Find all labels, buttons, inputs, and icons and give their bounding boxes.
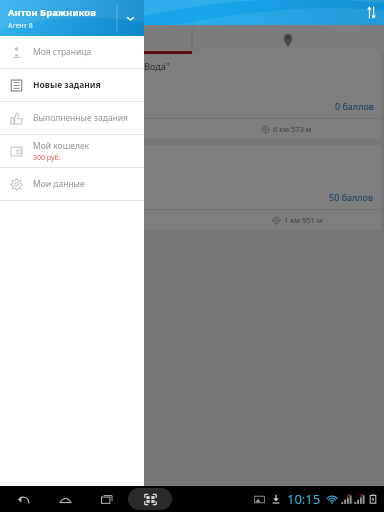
button[interactable]: Карта bbox=[192, 25, 384, 54]
staticText: 50 баллов bbox=[329, 191, 374, 203]
button[interactable]: Мои данные bbox=[0, 168, 144, 200]
button[interactable]: СПИСОК bbox=[0, 25, 192, 54]
button[interactable]: Назад bbox=[10, 486, 36, 512]
button[interactable]: Выполненные задания bbox=[0, 102, 144, 134]
button[interactable]: Моя страница bbox=[0, 36, 144, 68]
staticText: Москва, ул. Костянова, 10 bbox=[10, 124, 104, 134]
staticText: Проверка "Самолеты: Огонь и Вода" bbox=[10, 60, 170, 72]
staticText: Моя страница bbox=[33, 46, 92, 58]
button[interactable]: Фотоотчет с мероприятиями bbox=[3, 145, 381, 230]
button[interactable]: Мой кошелек bbox=[0, 135, 144, 167]
button[interactable]: Синхронизация bbox=[359, 0, 384, 25]
staticText: Мой кошелек bbox=[33, 140, 90, 152]
staticText: Антон Бражников bbox=[8, 6, 96, 19]
staticText: Задания bbox=[34, 6, 76, 20]
button[interactable]: Антон Бражников bbox=[0, 0, 144, 36]
staticText: Мои данные bbox=[33, 178, 85, 190]
button[interactable]: Во весь экран bbox=[128, 488, 172, 510]
staticText: Выполненные задания bbox=[33, 112, 129, 124]
button[interactable]: Проверка "Самолеты: Огонь и Вода" bbox=[3, 54, 381, 139]
staticText: 0 баллов bbox=[335, 100, 374, 112]
button[interactable]: Новые задания bbox=[0, 69, 144, 101]
staticText: Новые задания bbox=[33, 79, 101, 91]
button[interactable]: Сменить аккаунт bbox=[117, 0, 144, 36]
button[interactable]: Домой bbox=[52, 486, 78, 512]
staticText: Агент 8 bbox=[8, 21, 33, 31]
staticText: 300 руб. bbox=[33, 153, 61, 163]
staticText: СПИСОК bbox=[79, 34, 113, 45]
staticText: 10:15 bbox=[287, 490, 321, 508]
staticText: 1 км 951 м bbox=[284, 215, 323, 225]
button[interactable]: Недавние bbox=[94, 486, 120, 512]
staticText: 6 км 573 м bbox=[273, 124, 312, 134]
staticText: Фотоотчет с мероприятиями bbox=[10, 151, 137, 163]
